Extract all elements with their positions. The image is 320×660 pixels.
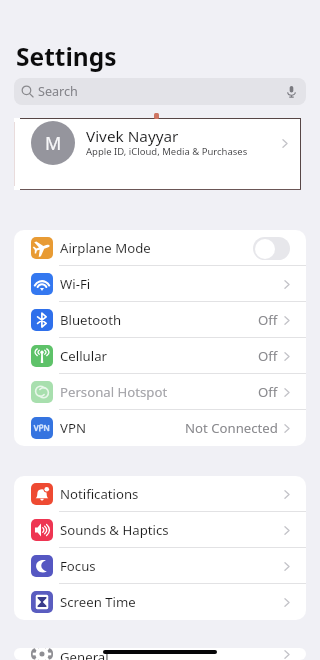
button[interactable]: Notifications — [14, 476, 306, 512]
button[interactable]: M — [14, 118, 301, 190]
button[interactable]: Wi-Fi — [14, 266, 306, 302]
button[interactable]: Search — [14, 78, 306, 105]
button[interactable]: Focus — [14, 548, 306, 584]
staticText: M — [45, 131, 62, 156]
staticText: Screen Time — [60, 593, 136, 611]
other: Voice search — [285, 85, 298, 98]
staticText: Notifications — [60, 485, 139, 503]
staticText: Off — [258, 383, 278, 401]
staticText: VPN — [60, 419, 86, 437]
button[interactable]: Sounds & Haptics — [14, 512, 306, 548]
staticText: Off — [258, 347, 278, 365]
staticText: Off — [258, 311, 278, 329]
button[interactable]: Bluetooth — [14, 302, 306, 338]
staticText: General — [60, 648, 109, 660]
button[interactable]: Personal Hotspot — [14, 374, 306, 410]
button[interactable]: General — [14, 648, 306, 660]
button[interactable]: Screen Time — [14, 584, 306, 620]
staticText: Settings — [16, 40, 117, 73]
button[interactable]: Cellular — [14, 338, 306, 374]
staticText: Wi-Fi — [60, 275, 91, 293]
button[interactable]: Toggle Airplane Mode — [253, 237, 290, 260]
staticText: Airplane Mode — [60, 239, 151, 257]
staticText: Not Connected — [185, 419, 278, 437]
button[interactable]: VPN — [14, 410, 306, 446]
staticText: Cellular — [60, 347, 107, 365]
staticText: Personal Hotspot — [60, 383, 168, 401]
button[interactable]: Airplane Mode — [14, 230, 306, 266]
staticText: Apple ID, iCloud, Media & Purchases — [86, 145, 248, 158]
staticText: Focus — [60, 557, 96, 575]
staticText: Sounds & Haptics — [60, 521, 169, 539]
staticText: Search — [38, 83, 78, 100]
staticText: Vivek Nayyar — [86, 126, 179, 147]
staticText: Bluetooth — [60, 311, 122, 329]
